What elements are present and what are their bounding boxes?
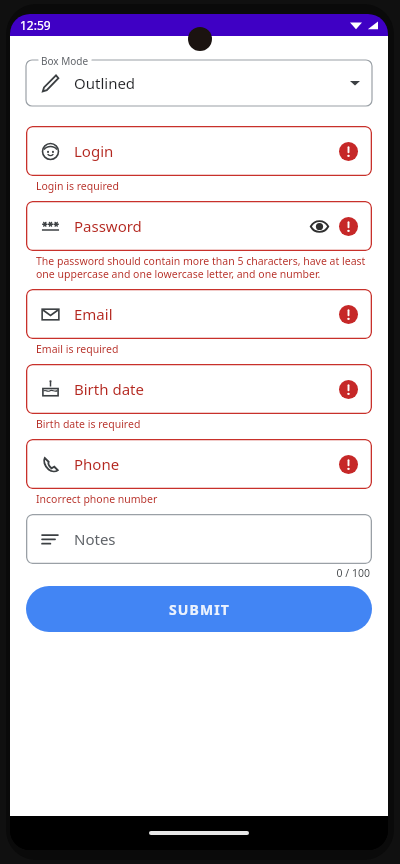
other: Error	[339, 380, 358, 399]
staticText: Phone	[74, 454, 120, 474]
button[interactable]: Birth date	[26, 364, 372, 414]
staticText: Incorrect phone number	[36, 492, 158, 506]
staticText: The password should contain more than 5 …	[36, 254, 368, 281]
button[interactable]: SUBMIT	[26, 586, 372, 632]
staticText: 12:59	[20, 17, 51, 33]
button[interactable]: Email	[26, 289, 372, 339]
button[interactable]: Toggle password visibility	[307, 214, 331, 238]
button[interactable]: Phone	[26, 439, 372, 489]
staticText: SUBMIT	[169, 600, 230, 619]
other: Error	[339, 217, 358, 236]
other: Error	[339, 305, 358, 324]
staticText: Birth date is required	[36, 417, 141, 431]
staticText: Birth date	[74, 379, 144, 399]
button[interactable]: Login	[26, 126, 372, 176]
button[interactable]: Password	[26, 201, 372, 251]
staticText: Password	[74, 216, 142, 236]
staticText: Box Mode	[41, 54, 89, 68]
staticText: Notes	[74, 529, 116, 549]
staticText: 0 / 100	[26, 566, 370, 580]
staticText: Outlined	[74, 73, 136, 93]
staticText: Email	[74, 304, 113, 324]
staticText: Login	[74, 141, 114, 161]
button[interactable]: Notes	[26, 514, 372, 564]
staticText: Login is required	[36, 179, 119, 193]
staticText: Email is required	[36, 342, 119, 356]
other: Error	[339, 142, 358, 161]
other: Error	[339, 455, 358, 474]
button[interactable]: Box Mode	[26, 54, 372, 106]
